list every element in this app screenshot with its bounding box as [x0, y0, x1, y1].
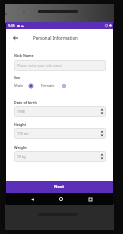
- button[interactable]: Back: [26, 193, 38, 205]
- button[interactable]: Recents: [84, 193, 96, 205]
- button[interactable]: Female: [41, 83, 66, 88]
- staticText: 170 cm: [17, 131, 29, 136]
- staticText: Male: [14, 83, 24, 88]
- button[interactable]: 1998: [14, 106, 106, 117]
- button[interactable]: Male: [14, 83, 33, 88]
- button[interactable]: 170 cm: [14, 128, 106, 139]
- button[interactable]: Home: [55, 193, 67, 205]
- staticText: Female: [41, 83, 55, 88]
- staticText: Sex: [14, 75, 21, 80]
- button[interactable]: Next: [6, 181, 113, 193]
- button[interactable]: 70 kg: [14, 151, 106, 162]
- staticText: 70 kg: [17, 154, 26, 159]
- button[interactable]: Please enter your nick name: [14, 60, 106, 71]
- staticText: Date of birth: [14, 100, 37, 105]
- button[interactable]: Back: [6, 29, 24, 46]
- staticText: Nick Name: [14, 53, 34, 58]
- staticText: Personal Information: [33, 35, 78, 41]
- staticText: Next: [54, 184, 65, 190]
- staticText: Height: [14, 122, 27, 127]
- staticText: Please enter your nick name: [17, 63, 63, 68]
- staticText: 1998: [17, 109, 25, 114]
- staticText: 9:36: [8, 23, 15, 28]
- staticText: Weight: [14, 145, 27, 150]
